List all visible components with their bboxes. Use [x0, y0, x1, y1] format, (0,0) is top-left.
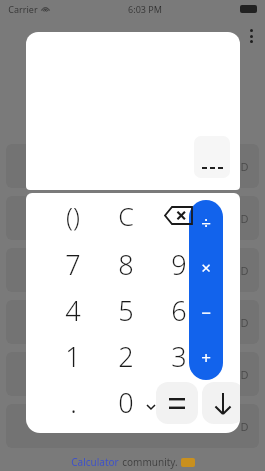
staticText: 4 [65, 292, 81, 329]
button[interactable]: 5 [105, 290, 147, 330]
button[interactable]: More [194, 136, 230, 178]
staticText: 8 [118, 246, 134, 283]
staticText: × [201, 256, 211, 279]
button[interactable]: 7 [52, 244, 94, 284]
staticText: 6 [171, 292, 187, 329]
staticText: − [201, 301, 211, 324]
button[interactable]: . [52, 382, 94, 422]
button[interactable]: Multiply [189, 245, 223, 290]
staticText: D [240, 367, 249, 382]
staticText: 6:03 PM [128, 3, 162, 15]
staticText: () [66, 199, 80, 233]
button[interactable]: Add [189, 335, 223, 380]
button[interactable]: 4 [52, 290, 94, 330]
staticText: Calculator [71, 455, 119, 469]
button[interactable]: Subtract [189, 290, 223, 335]
staticText: 3 [171, 338, 187, 375]
staticText: 2 [118, 338, 134, 375]
staticText: ÷ [201, 211, 211, 234]
button[interactable]: 0 [105, 382, 147, 422]
button[interactable]: 6 [158, 290, 200, 330]
button[interactable]: C [105, 196, 147, 236]
button[interactable]: 8 [105, 244, 147, 284]
staticText: 7 [65, 246, 81, 283]
button[interactable]: 1 [52, 336, 94, 376]
button[interactable]: More options [244, 27, 258, 45]
staticText: 9 [171, 246, 187, 283]
staticText: community. [122, 455, 178, 469]
staticText: . [70, 384, 77, 421]
button[interactable]: Hide keypad [202, 382, 240, 424]
button[interactable]: () [52, 196, 94, 236]
staticText: 0 [118, 384, 134, 421]
staticText: 1 [65, 338, 81, 375]
staticText: D [240, 263, 249, 278]
staticText: + [201, 346, 211, 369]
button[interactable]: 2 [105, 336, 147, 376]
staticText: 5 [118, 292, 134, 329]
button[interactable]: Backspace [158, 196, 198, 234]
button[interactable]: 9 [158, 244, 200, 284]
button[interactable]: Divide [189, 200, 223, 245]
staticText: Carrier [8, 3, 38, 15]
staticText: D [240, 159, 249, 174]
staticText: D [240, 315, 249, 330]
button[interactable]: Equals [156, 382, 198, 424]
staticText: C [118, 199, 134, 233]
button[interactable]: 3 [158, 336, 200, 376]
staticText: D [240, 211, 249, 226]
button[interactable]: Collapse [144, 400, 158, 414]
staticText: D [240, 419, 249, 434]
